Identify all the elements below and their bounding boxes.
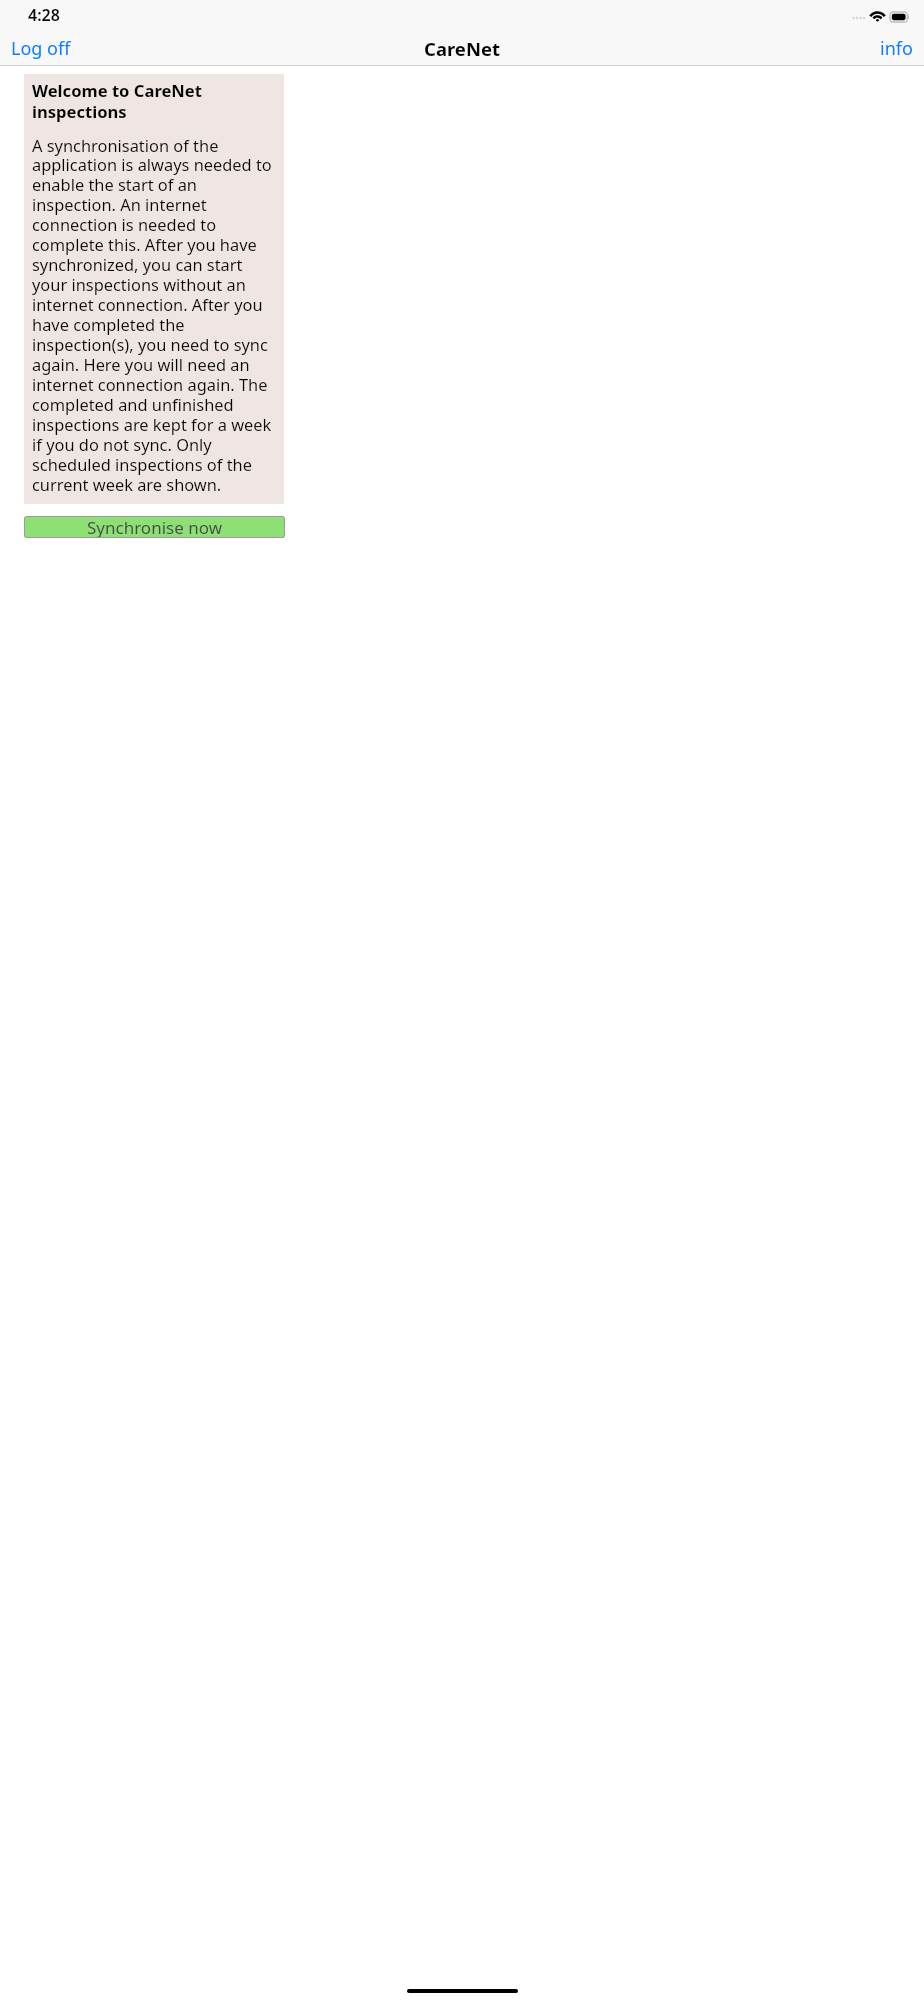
- button[interactable]: Log off: [0, 32, 79, 65]
- other: Battery full: [890, 12, 909, 22]
- staticText: Synchronise now: [87, 516, 222, 538]
- button[interactable]: info: [872, 32, 924, 65]
- staticText: Welcome to CareNet inspections: [32, 79, 277, 123]
- staticText: A synchronisation of the application is …: [32, 134, 277, 496]
- staticText: CareNet: [424, 36, 501, 61]
- staticText: 4:28: [28, 4, 60, 26]
- button[interactable]: Synchronise now: [24, 516, 285, 538]
